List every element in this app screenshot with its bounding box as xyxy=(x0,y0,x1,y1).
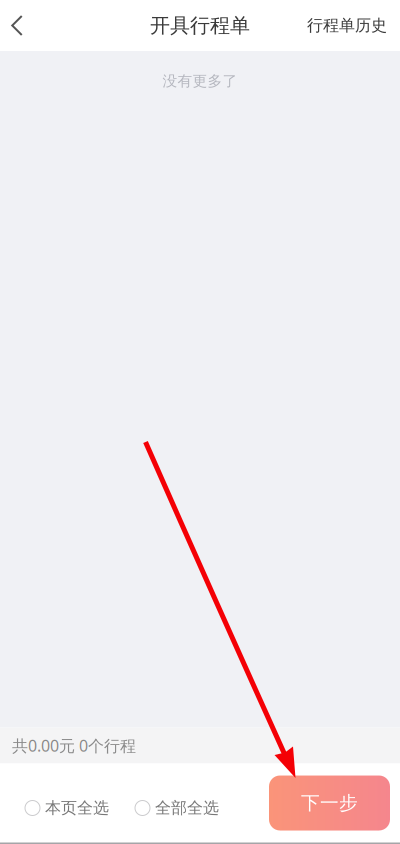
staticText: 行程单历史 xyxy=(307,16,387,35)
button[interactable]: 下一步 xyxy=(269,775,390,830)
staticText: 共0.00元 0个行程 xyxy=(12,735,136,756)
staticText: 下一步 xyxy=(301,791,358,814)
staticText: 开具行程单 xyxy=(150,13,250,38)
button[interactable]: 全部全选 xyxy=(135,778,219,828)
button[interactable]: 本页全选 xyxy=(25,778,109,828)
staticText: 全部全选 xyxy=(155,798,219,818)
button[interactable]: Back xyxy=(0,0,34,51)
staticText: 没有更多了 xyxy=(162,72,237,90)
button[interactable]: 行程单历史 xyxy=(294,0,400,51)
staticText: 本页全选 xyxy=(45,798,109,818)
